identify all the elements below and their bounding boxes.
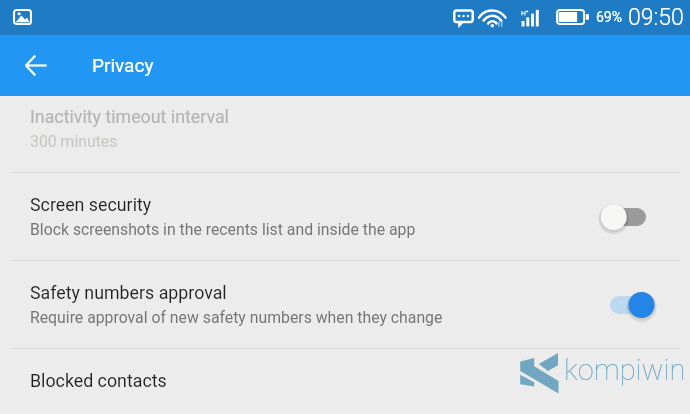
staticText: 09:50	[628, 4, 684, 31]
staticText: Privacy	[92, 54, 154, 76]
staticText: Inactivity timeout interval	[30, 106, 229, 127]
staticText: kompiwin	[564, 353, 686, 387]
staticText: Screen security	[30, 194, 152, 215]
staticText: 300 minutes	[30, 132, 118, 151]
button[interactable]: Screen security	[0, 173, 690, 260]
button[interactable]: Disabled	[600, 195, 656, 239]
button[interactable]: Safety numbers approval	[0, 261, 690, 348]
staticText: Safety numbers approval	[30, 282, 227, 303]
staticText: Require approval of new safety numbers w…	[30, 308, 443, 327]
staticText: Block screenshots in the recents list an…	[30, 220, 416, 239]
button[interactable]: Enabled	[600, 283, 656, 327]
button[interactable]: Back	[11, 40, 61, 90]
button[interactable]: Inactivity timeout interval	[0, 85, 690, 172]
staticText: Blocked contacts	[30, 370, 167, 391]
staticText: 69%	[596, 9, 622, 25]
button[interactable]: Blocked contacts	[0, 349, 690, 414]
